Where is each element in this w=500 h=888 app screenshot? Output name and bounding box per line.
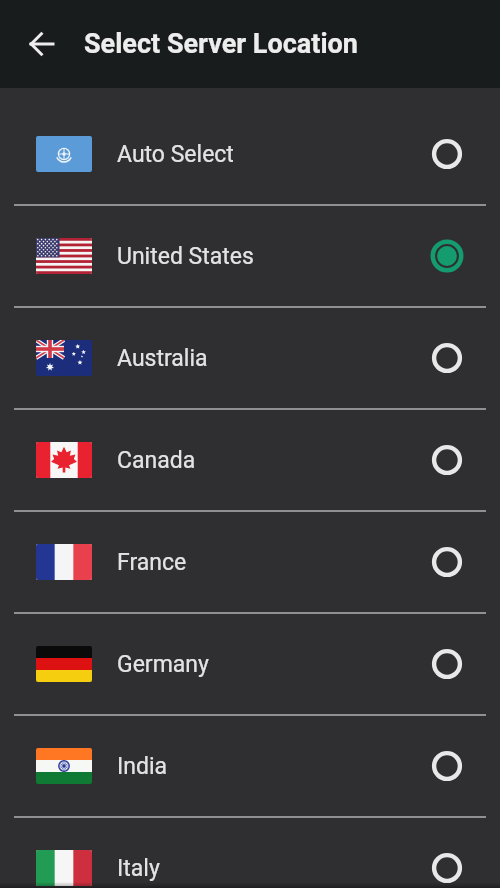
staticText: Select Server Location	[84, 28, 358, 60]
button[interactable]: France	[0, 512, 500, 612]
staticText: Germany	[117, 651, 209, 678]
staticText: Italy	[117, 855, 160, 882]
button[interactable]: Auto Select	[0, 104, 500, 204]
staticText: France	[117, 549, 187, 576]
staticText: Australia	[117, 345, 208, 372]
button[interactable]: Canada	[0, 410, 500, 510]
button[interactable]	[0, 0, 84, 88]
staticText: United States	[117, 243, 254, 270]
staticText: Canada	[117, 447, 196, 474]
button[interactable]: Germany	[0, 614, 500, 714]
button[interactable]: Australia	[0, 308, 500, 408]
button[interactable]: United States	[0, 206, 500, 306]
button[interactable]: India	[0, 716, 500, 816]
staticText: India	[117, 753, 168, 780]
button[interactable]: Italy	[0, 818, 500, 888]
staticText: Auto Select	[117, 141, 234, 168]
